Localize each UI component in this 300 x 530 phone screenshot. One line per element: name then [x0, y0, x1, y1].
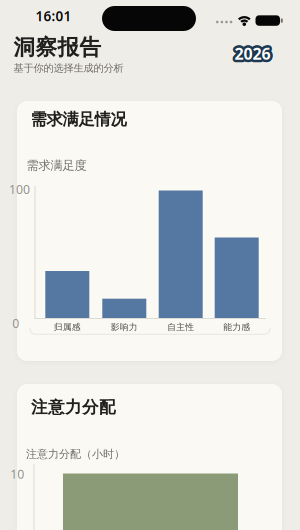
staticText: 2026: [234, 41, 270, 63]
staticText: 2026: [235, 40, 271, 62]
staticText: 需求满足情况: [30, 109, 126, 129]
staticText: 2026: [235, 44, 271, 66]
staticText: 2026: [232, 43, 268, 64]
staticText: 2026: [235, 43, 271, 65]
staticText: 需求满足度: [26, 158, 86, 173]
staticText: 10: [10, 466, 24, 482]
staticText: 2026: [236, 43, 272, 65]
staticText: 自主性: [167, 321, 194, 333]
staticText: 2026: [234, 43, 270, 65]
staticText: 2026: [233, 42, 269, 64]
staticText: 2026: [236, 41, 272, 63]
staticText: 2026: [235, 43, 271, 64]
staticText: 2026: [234, 43, 270, 64]
staticText: 2026: [236, 44, 272, 66]
staticText: 基于你的选择生成的分析: [13, 62, 123, 74]
staticText: 2026: [235, 45, 271, 67]
staticText: 2026: [235, 41, 271, 63]
staticText: 2026: [234, 43, 270, 65]
staticText: 2026: [234, 43, 270, 64]
staticText: 2026: [232, 42, 268, 63]
staticText: 能力感: [223, 321, 250, 333]
staticText: 2026: [234, 45, 270, 67]
staticText: 影响力: [111, 321, 138, 333]
staticText: 2026: [233, 40, 269, 62]
staticText: 2026: [234, 42, 270, 63]
staticText: 2026: [237, 42, 273, 63]
staticText: 2026: [234, 42, 270, 64]
staticText: 100: [9, 181, 30, 198]
staticText: 2026: [237, 44, 273, 65]
staticText: 注意力分配: [31, 397, 116, 418]
staticText: 2026: [233, 41, 269, 63]
staticText: 2026: [234, 44, 270, 66]
staticText: 2026: [233, 43, 269, 65]
staticText: 2026: [233, 45, 269, 67]
staticText: 注意力分配（小时）: [26, 447, 125, 461]
staticText: 2026: [232, 44, 268, 65]
staticText: 归属感: [54, 321, 81, 333]
staticText: 2026: [233, 44, 269, 66]
staticText: 2026: [235, 42, 271, 64]
staticText: 0: [12, 315, 19, 332]
staticText: 洞察报告: [13, 34, 101, 61]
staticText: 2026: [237, 43, 273, 64]
staticText: 2026: [234, 40, 270, 62]
staticText: 16:01: [35, 7, 71, 25]
staticText: 2026: [236, 42, 272, 64]
